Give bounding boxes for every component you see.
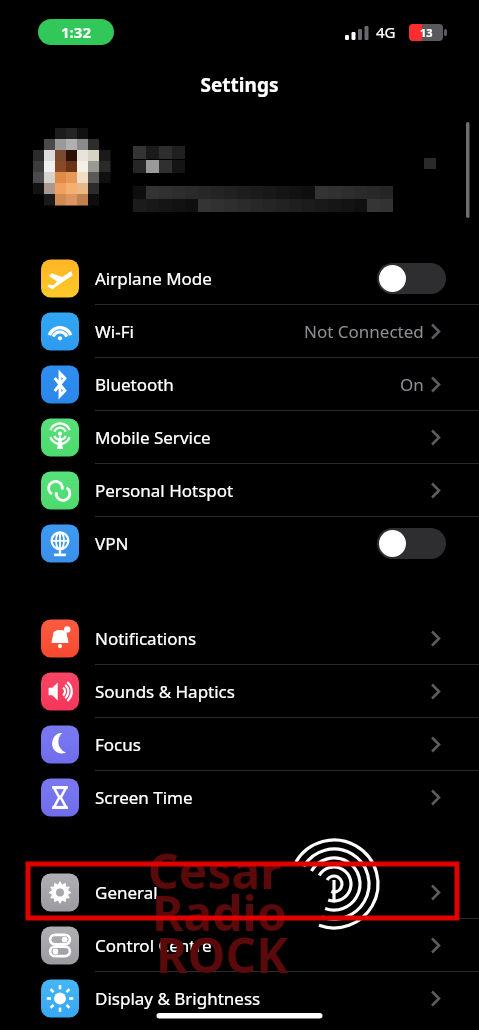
staticText: Radio xyxy=(152,880,287,945)
button[interactable]: Display & Brightness xyxy=(0,972,479,1025)
staticText: Settings xyxy=(0,72,479,98)
button[interactable]: Mobile Service xyxy=(0,411,479,464)
staticText: On xyxy=(400,373,424,396)
staticText: Bluetooth xyxy=(95,373,174,396)
button[interactable]: Focus xyxy=(0,718,479,771)
staticText: Cesar xyxy=(148,838,282,903)
button[interactable]: Personal Hotspot xyxy=(0,464,479,517)
staticText: Display & Brightness xyxy=(95,987,261,1010)
button[interactable]: Bluetooth xyxy=(0,358,479,411)
staticText: 4G xyxy=(376,22,396,42)
staticText: Not Connected xyxy=(304,320,424,343)
staticText: Notifications xyxy=(95,627,197,650)
button[interactable]: VPN xyxy=(0,517,479,570)
staticText: Personal Hotspot xyxy=(95,479,234,502)
staticText: 1:32 xyxy=(61,22,91,42)
staticText: Airplane Mode xyxy=(95,267,212,290)
button[interactable]: Wi-Fi xyxy=(0,305,479,358)
button[interactable]: Sounds & Haptics xyxy=(0,665,479,718)
staticText: VPN xyxy=(95,532,129,555)
staticText: Wi-Fi xyxy=(95,320,134,343)
button[interactable]: Notifications xyxy=(0,612,479,665)
staticText: Mobile Service xyxy=(95,426,211,449)
staticText: Focus xyxy=(95,733,141,756)
staticText: Control Centre xyxy=(95,934,212,957)
button[interactable]: Airplane Mode toggle xyxy=(377,263,446,294)
button[interactable]: Screen Time xyxy=(0,771,479,824)
button[interactable]: Airplane Mode xyxy=(0,252,479,305)
button[interactable]: Control Centre xyxy=(0,919,479,972)
staticText: 13 xyxy=(420,25,433,40)
staticText: ROCK xyxy=(156,922,289,987)
staticText: Sounds & Haptics xyxy=(95,680,235,703)
button[interactable] xyxy=(0,116,479,216)
button[interactable]: General xyxy=(0,866,479,919)
staticText: Screen Time xyxy=(95,786,193,809)
staticText: General xyxy=(95,881,158,904)
button[interactable]: VPN toggle xyxy=(377,528,446,559)
